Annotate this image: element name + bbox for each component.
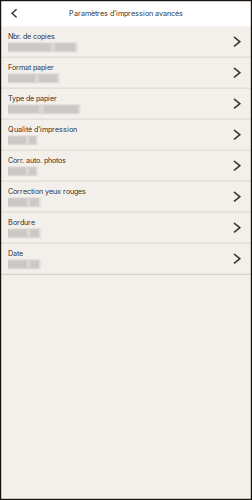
- staticText: Paramètres d'impression avancés: [69, 9, 183, 18]
- button[interactable]: Bordure: [0, 213, 252, 243]
- button[interactable]: Qualité d'impression: [0, 120, 252, 150]
- staticText: Type de papier: [8, 94, 57, 103]
- button[interactable]: Nbr. de copies: [0, 27, 252, 57]
- staticText: Corr. auto. photos: [8, 156, 66, 165]
- staticText: Correction yeux rouges: [8, 187, 86, 196]
- button[interactable]: Date: [0, 244, 252, 274]
- staticText: Date: [8, 249, 23, 258]
- button[interactable]: Format papier: [0, 58, 252, 88]
- button[interactable]: Back: [0, 0, 25, 26]
- button[interactable]: Type de papier: [0, 89, 252, 119]
- button[interactable]: Corr. auto. photos: [0, 151, 252, 181]
- staticText: Bordure: [8, 218, 35, 227]
- staticText: Qualité d'impression: [8, 125, 77, 134]
- staticText: Nbr. de copies: [8, 32, 55, 41]
- staticText: Format papier: [8, 63, 54, 72]
- button[interactable]: Correction yeux rouges: [0, 182, 252, 212]
